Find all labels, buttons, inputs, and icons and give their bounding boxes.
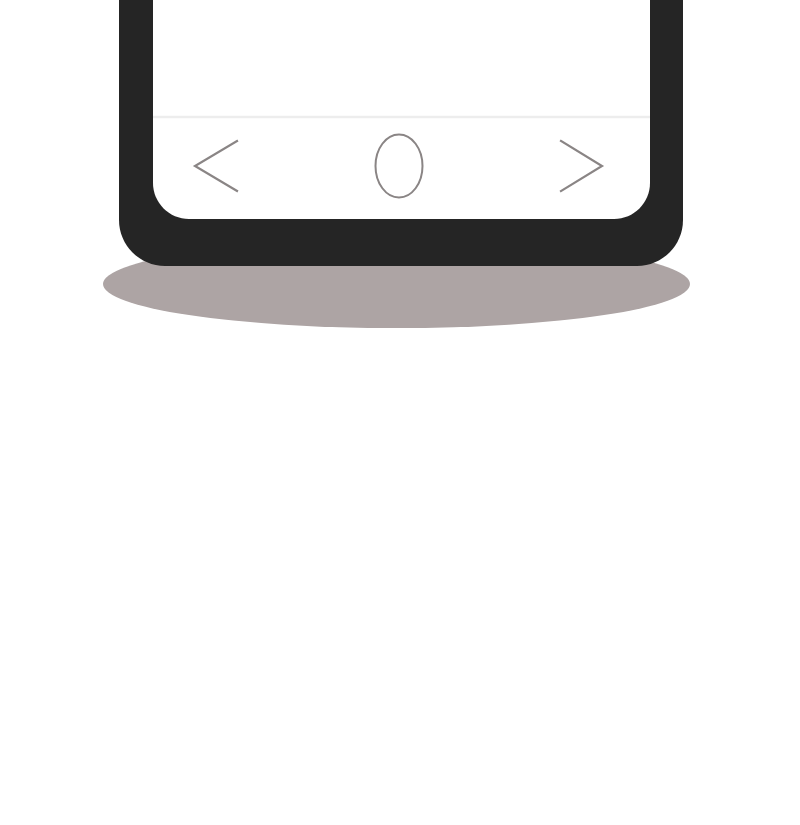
button[interactable]: Home (356, 124, 442, 210)
button[interactable]: Recent apps (540, 124, 626, 210)
button[interactable]: Back (172, 124, 258, 210)
